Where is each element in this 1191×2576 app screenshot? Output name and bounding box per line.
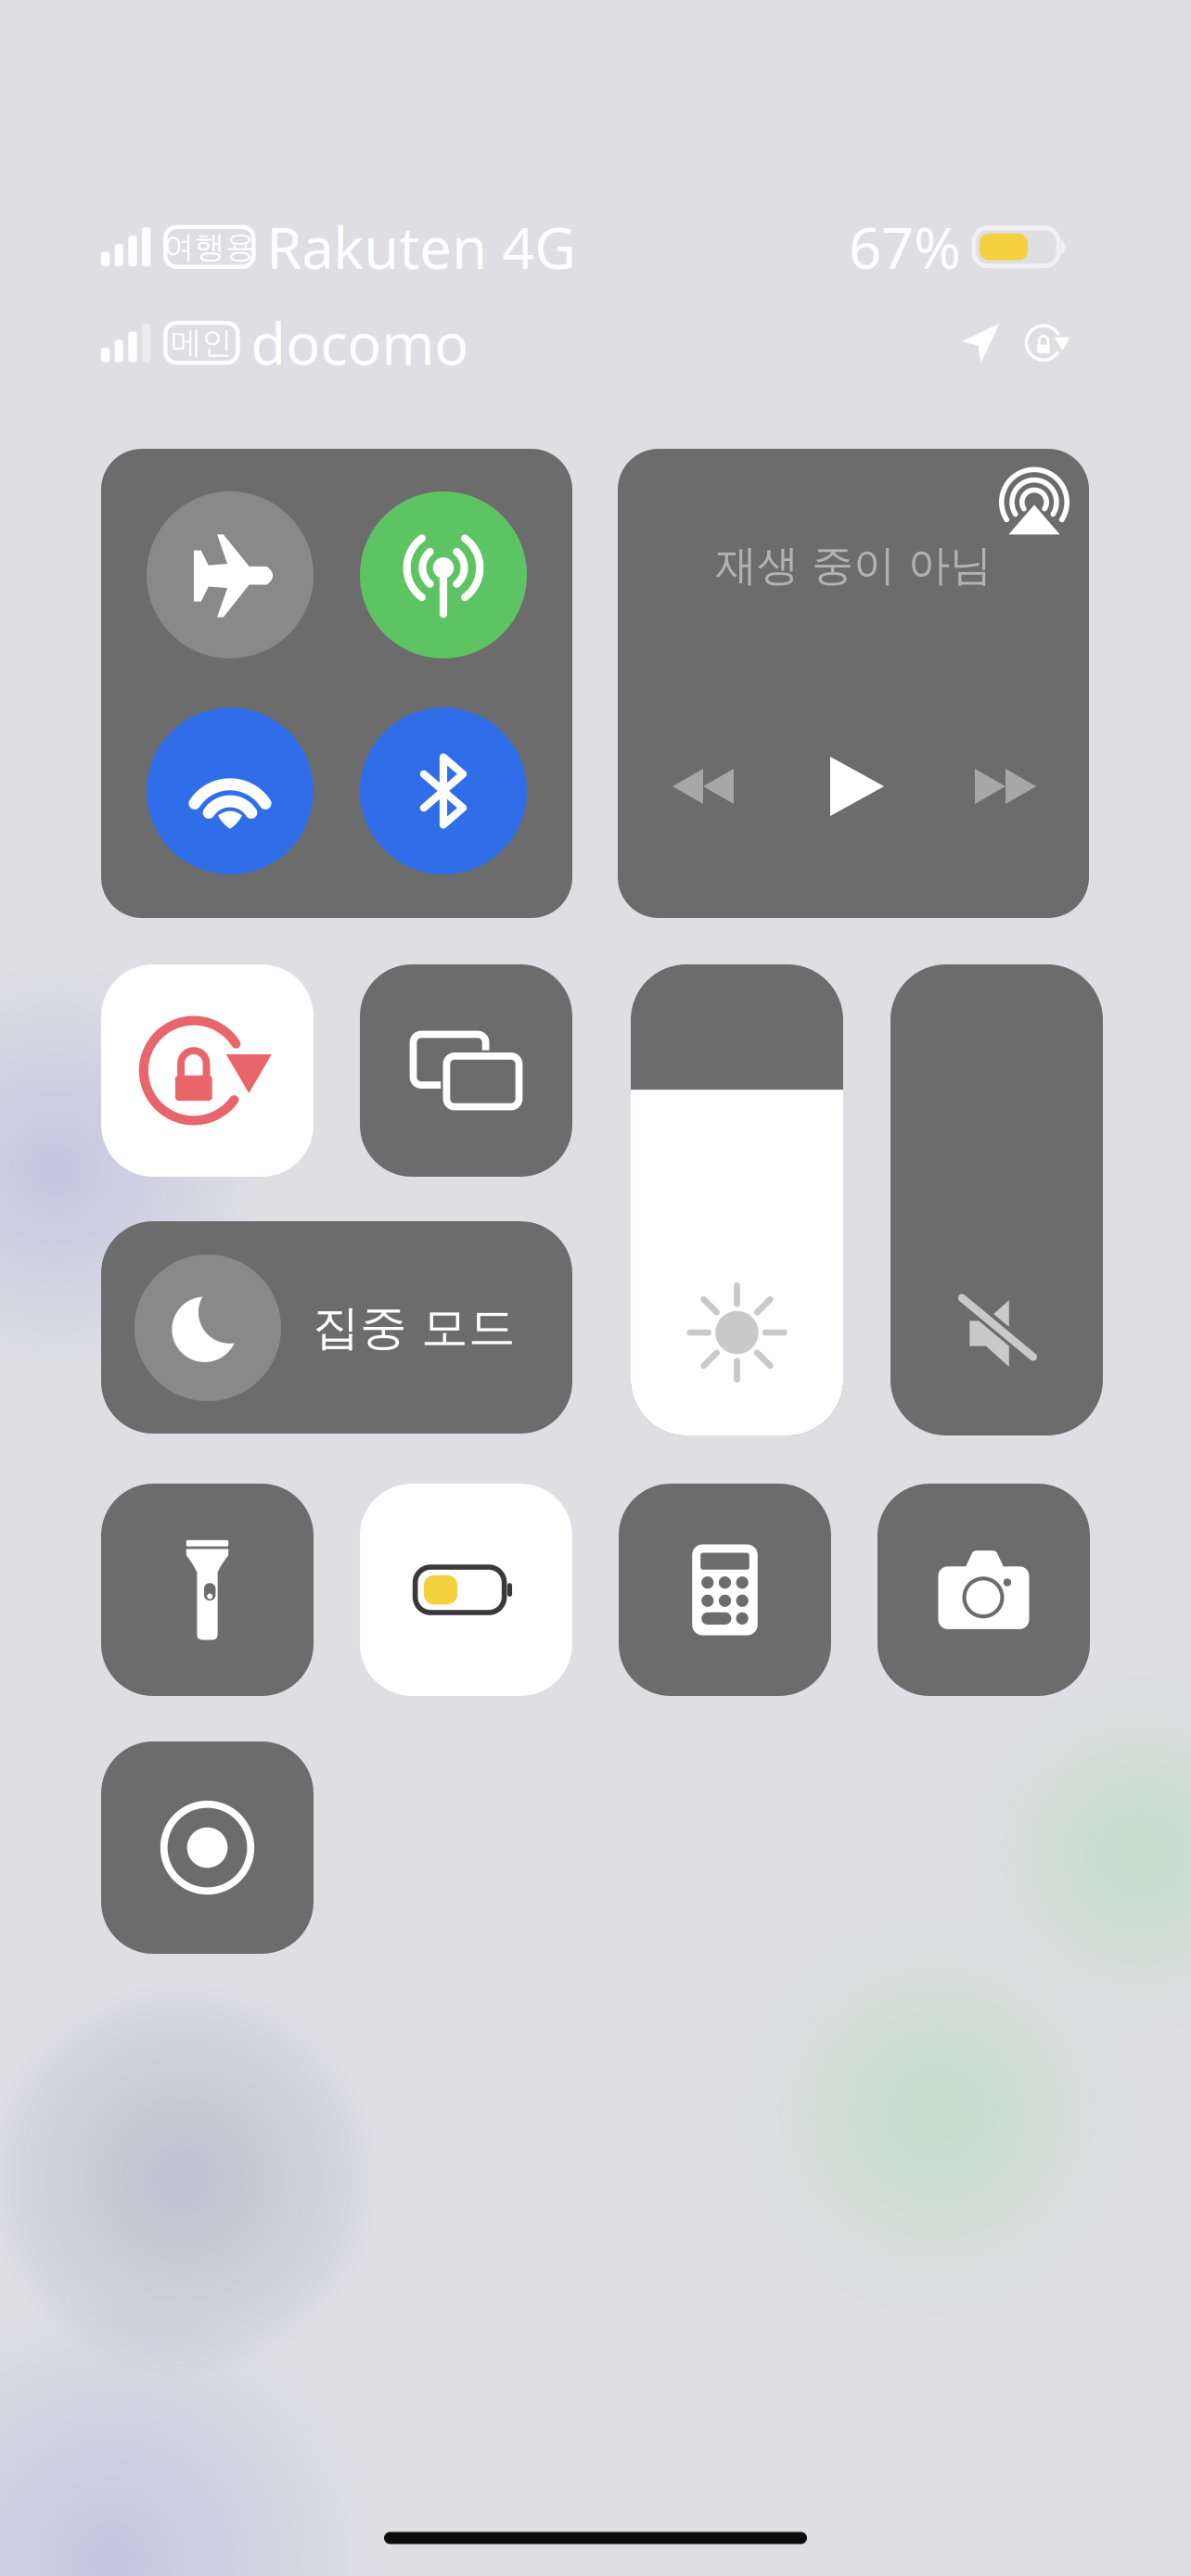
staticText: 여행용 [164, 228, 255, 266]
button[interactable]: Previous [672, 769, 734, 804]
staticText: 67% [849, 209, 961, 285]
button[interactable]: Screen Mirroring [360, 964, 572, 1177]
button[interactable]: Screen Recording [101, 1741, 314, 1954]
staticText: 집중 모드 [313, 1299, 516, 1357]
button[interactable]: Next [975, 769, 1036, 804]
button[interactable]: Airplane Mode [147, 491, 314, 658]
button[interactable]: Camera [877, 1484, 1090, 1696]
button[interactable]: AirPlay [997, 464, 1071, 538]
button[interactable]: Flashlight [101, 1484, 314, 1696]
staticText: docomo [251, 305, 469, 381]
button[interactable]: Brightness [631, 964, 843, 1435]
button[interactable]: Cellular Data [360, 491, 527, 658]
button[interactable]: Low Power Mode [360, 1484, 572, 1696]
staticText: Rakuten 4G [266, 209, 576, 285]
staticText: 재생 중이 아님 [715, 540, 992, 592]
button[interactable]: Bluetooth [360, 708, 527, 874]
button[interactable]: Play [830, 757, 884, 816]
button[interactable]: Calculator [619, 1484, 831, 1696]
button[interactable]: Volume [890, 964, 1103, 1435]
button[interactable]: Rotation Lock [101, 964, 314, 1177]
staticText: 메인 [171, 324, 232, 362]
button[interactable]: Focus [101, 1221, 572, 1434]
button[interactable]: Wi-Fi [147, 708, 314, 874]
